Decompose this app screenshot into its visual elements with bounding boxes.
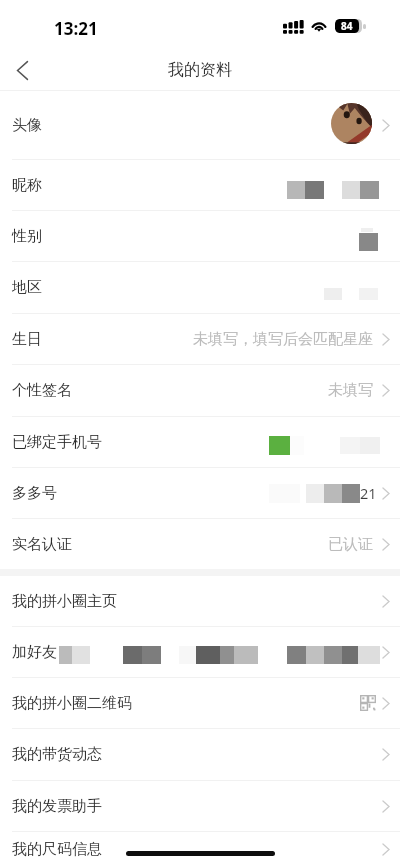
staticText: 头像 [12,116,42,135]
staticText: 我的发票助手 [12,797,102,816]
button[interactable]: 昵称 [0,160,400,210]
button[interactable]: 我的拼小圈主页 [0,576,400,626]
staticText: 我的带货动态 [12,745,102,764]
button[interactable]: 实名认证 [0,519,400,569]
button[interactable]: 已绑定手机号 [0,417,400,467]
button[interactable]: 生日 [0,314,400,364]
staticText: 地区 [12,278,42,297]
staticText: 已认证 [328,535,373,554]
staticText: 我的拼小圈二维码 [12,694,132,713]
button[interactable]: Back [0,47,44,93]
button[interactable]: 我的发票助手 [0,781,400,831]
staticText: 未填写，填写后会匹配星座 [193,330,373,349]
staticText: 多多号 [12,484,57,503]
button[interactable]: 我的拼小圈二维码 [0,678,400,728]
staticText: 加好友 [12,643,57,662]
button[interactable]: 个性签名 [0,365,400,416]
staticText: 未填写 [328,381,373,400]
button[interactable]: 加好友 [0,627,400,677]
staticText: 已绑定手机号 [12,433,102,452]
button[interactable]: 性别 [0,211,400,261]
staticText: 昵称 [12,176,42,195]
button[interactable]: 头像 [0,91,400,159]
staticText: 实名认证 [12,535,72,554]
staticText: 个性签名 [12,381,72,400]
button[interactable]: 地区 [0,262,400,313]
button[interactable]: 多多号 [0,468,400,518]
staticText: 生日 [12,330,42,349]
staticText: 13:21 [54,17,98,40]
staticText: 84 [341,19,353,33]
staticText: 我的拼小圈主页 [12,592,117,611]
staticText: 21 [360,483,377,503]
staticText: 我的尺码信息 [12,840,102,859]
staticText: 性别 [12,227,42,246]
button[interactable]: 我的尺码信息 [0,832,400,866]
staticText: 我的资料 [168,60,232,80]
button[interactable]: 我的带货动态 [0,729,400,780]
